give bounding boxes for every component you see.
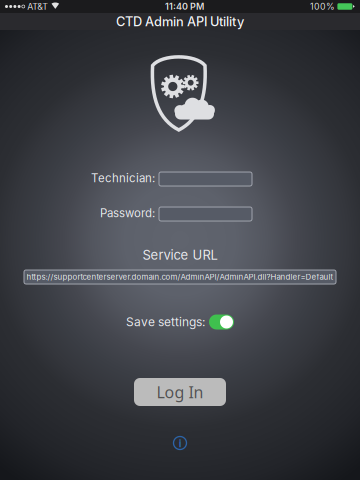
button[interactable]: Log In xyxy=(134,378,226,406)
button[interactable]: Information xyxy=(170,433,190,453)
staticText: Save settings: xyxy=(126,315,205,329)
staticText: Technician: xyxy=(91,171,155,185)
staticText: 11:40 PM xyxy=(165,1,204,12)
staticText: https://supportcenterserver.domain.com/A… xyxy=(26,272,333,282)
staticText: 100% xyxy=(310,1,335,12)
staticText: AT&T xyxy=(27,1,48,12)
staticText: Log In xyxy=(156,381,203,403)
staticText: Service URL xyxy=(142,247,217,263)
staticText: Password: xyxy=(100,206,155,220)
staticText: i xyxy=(178,436,181,450)
staticText: CTD Admin API Utility xyxy=(116,14,244,29)
